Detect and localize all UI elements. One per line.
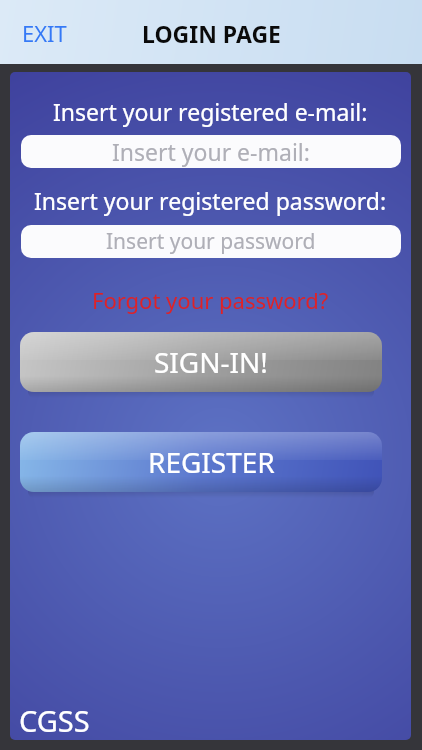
button[interactable]: EXIT bbox=[22, 18, 67, 48]
staticText: Insert your password bbox=[106, 227, 316, 256]
staticText: Insert your e-mail: bbox=[112, 136, 310, 167]
staticText: Forgot your password? bbox=[92, 285, 329, 315]
button[interactable]: Forgot your password? bbox=[92, 285, 329, 315]
staticText: REGISTER bbox=[148, 443, 275, 481]
staticText: SIGN-IN! bbox=[154, 343, 268, 381]
button[interactable]: Insert your e-mail: bbox=[21, 135, 401, 168]
staticText: Insert your registered password: bbox=[34, 185, 387, 216]
button[interactable]: SIGN-IN! bbox=[20, 332, 382, 392]
button[interactable]: Insert your password bbox=[21, 225, 401, 258]
staticText: CGSS bbox=[19, 701, 90, 740]
staticText: Insert your registered e-mail: bbox=[53, 96, 368, 127]
staticText: EXIT bbox=[22, 18, 67, 48]
staticText: LOGIN PAGE bbox=[142, 18, 281, 49]
button[interactable]: REGISTER bbox=[20, 432, 382, 492]
